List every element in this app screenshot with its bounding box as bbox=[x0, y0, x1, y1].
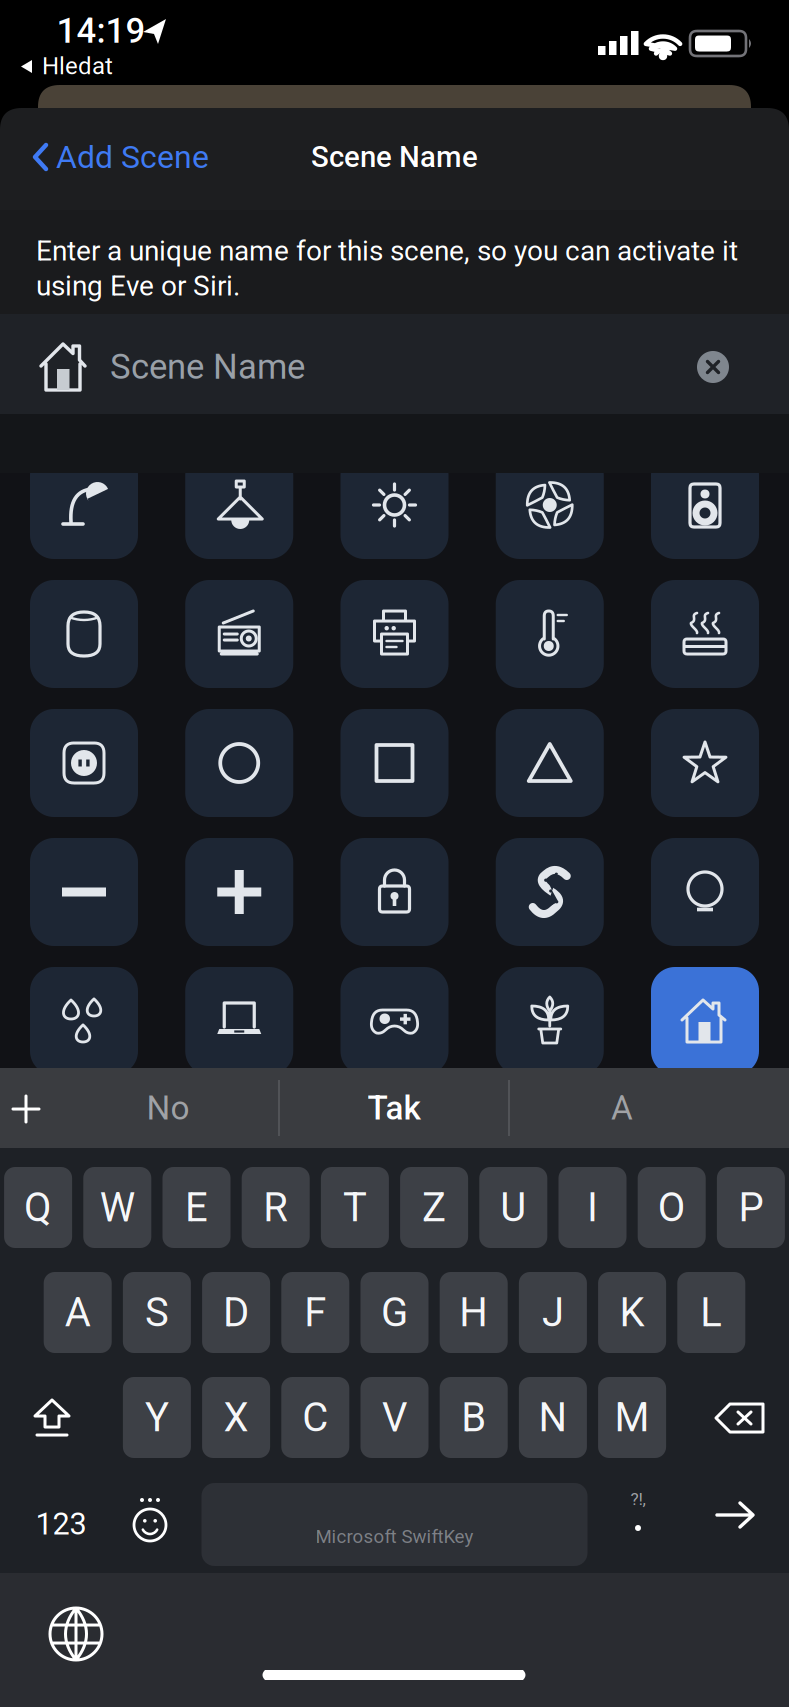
button[interactable]: Icon 19 bbox=[651, 838, 759, 946]
button[interactable]: Y bbox=[123, 1377, 191, 1458]
staticText: K bbox=[620, 1289, 645, 1336]
staticText: B bbox=[461, 1394, 486, 1441]
button[interactable]: Icon 17 bbox=[340, 838, 448, 946]
button[interactable]: I bbox=[558, 1167, 626, 1248]
staticText: H bbox=[459, 1289, 488, 1336]
staticText: U bbox=[500, 1184, 526, 1231]
button[interactable]: T bbox=[321, 1167, 389, 1248]
staticText: O bbox=[658, 1184, 686, 1231]
button[interactable]: P bbox=[717, 1167, 785, 1248]
button[interactable]: Icon 1 bbox=[185, 451, 293, 559]
button[interactable]: Switch keyboard bbox=[49, 1607, 103, 1661]
staticText: S bbox=[145, 1289, 169, 1336]
button[interactable]: Icon 12 bbox=[340, 709, 448, 817]
staticText: ?!, bbox=[630, 1489, 645, 1509]
button[interactable]: G bbox=[360, 1272, 428, 1353]
staticText: X bbox=[224, 1394, 249, 1441]
button[interactable]: N bbox=[519, 1377, 587, 1458]
staticText: L bbox=[700, 1289, 722, 1336]
button[interactable]: D bbox=[202, 1272, 270, 1353]
button[interactable]: Clear text bbox=[697, 351, 729, 383]
staticText: 14:19 bbox=[56, 11, 145, 51]
staticText: Enter a unique name for this scene, so y… bbox=[36, 235, 738, 267]
staticText: Scene Name bbox=[110, 347, 305, 387]
button[interactable]: Back to Add Scene bbox=[32, 141, 232, 173]
button[interactable]: W bbox=[83, 1167, 151, 1248]
button[interactable]: Shift bbox=[33, 1399, 71, 1437]
button[interactable]: O bbox=[638, 1167, 706, 1248]
button[interactable]: Icon 0 bbox=[30, 451, 138, 559]
button[interactable]: Icon 15 bbox=[30, 838, 138, 946]
button[interactable]: S bbox=[123, 1272, 191, 1353]
button[interactable]: Icon 20 bbox=[30, 967, 138, 1075]
button[interactable]: Emoji bbox=[133, 1498, 167, 1542]
staticText: Microsoft SwiftKey bbox=[315, 1526, 473, 1547]
staticText: W bbox=[100, 1184, 135, 1231]
button[interactable]: A bbox=[44, 1272, 112, 1353]
button[interactable]: M bbox=[598, 1377, 666, 1458]
button[interactable]: No bbox=[78, 1068, 258, 1148]
button[interactable]: Icon 8 bbox=[496, 580, 604, 688]
button[interactable]: 123 bbox=[11, 1484, 111, 1564]
staticText: V bbox=[382, 1394, 407, 1441]
button[interactable]: Icon 4 bbox=[651, 451, 759, 559]
button[interactable]: Icon 16 bbox=[185, 838, 293, 946]
button[interactable]: Icon 24 bbox=[651, 967, 759, 1075]
staticText: using Eve or Siri. bbox=[36, 270, 240, 302]
staticText: F bbox=[304, 1289, 326, 1336]
button[interactable]: L bbox=[677, 1272, 745, 1353]
button[interactable]: Icon 7 bbox=[340, 580, 448, 688]
staticText: Hledat bbox=[42, 52, 113, 80]
staticText: Q bbox=[24, 1184, 52, 1231]
staticText: No bbox=[146, 1088, 189, 1128]
staticText: D bbox=[223, 1289, 249, 1336]
staticText: R bbox=[263, 1184, 288, 1231]
button[interactable]: H bbox=[440, 1272, 508, 1353]
staticText: Add Scene bbox=[56, 138, 209, 176]
button[interactable]: U bbox=[479, 1167, 547, 1248]
button[interactable]: Icon 3 bbox=[496, 451, 604, 559]
staticText: E bbox=[185, 1184, 208, 1231]
staticText: 123 bbox=[35, 1506, 86, 1542]
button[interactable]: R bbox=[242, 1167, 310, 1248]
button[interactable]: Icon 23 bbox=[496, 967, 604, 1075]
button[interactable]: J bbox=[519, 1272, 587, 1353]
button[interactable]: Tak bbox=[294, 1068, 494, 1148]
staticText: Y bbox=[145, 1394, 169, 1441]
button[interactable]: Space bbox=[201, 1483, 587, 1566]
staticText: A bbox=[611, 1088, 633, 1128]
staticText: Scene Name bbox=[311, 140, 478, 174]
button[interactable]: V bbox=[360, 1377, 428, 1458]
button[interactable]: Add bbox=[12, 1095, 40, 1123]
button[interactable]: Icon 14 bbox=[651, 709, 759, 817]
staticText: N bbox=[538, 1394, 567, 1441]
button[interactable]: F bbox=[281, 1272, 349, 1353]
button[interactable]: K bbox=[598, 1272, 666, 1353]
button[interactable]: Icon 5 bbox=[30, 580, 138, 688]
button[interactable]: B bbox=[440, 1377, 508, 1458]
staticText: P bbox=[738, 1184, 763, 1231]
button[interactable]: Z bbox=[400, 1167, 468, 1248]
button[interactable]: C bbox=[281, 1377, 349, 1458]
button[interactable]: Delete bbox=[715, 1403, 765, 1433]
staticText: I bbox=[587, 1184, 598, 1231]
button[interactable]: Icon 10 bbox=[30, 709, 138, 817]
button[interactable]: Punctuation bbox=[613, 1487, 663, 1547]
staticText: A bbox=[65, 1289, 91, 1336]
button[interactable]: Icon 13 bbox=[496, 709, 604, 817]
button[interactable]: Next bbox=[716, 1500, 756, 1530]
staticText: G bbox=[381, 1289, 408, 1336]
staticText: M bbox=[615, 1394, 650, 1441]
button[interactable]: Icon 21 bbox=[185, 967, 293, 1075]
button[interactable]: Icon 2 bbox=[340, 451, 448, 559]
button[interactable]: Q bbox=[4, 1167, 72, 1248]
button[interactable]: X bbox=[202, 1377, 270, 1458]
staticText: C bbox=[302, 1394, 328, 1441]
button[interactable]: Icon 9 bbox=[651, 580, 759, 688]
button[interactable]: Icon 6 bbox=[185, 580, 293, 688]
button[interactable]: Icon 22 bbox=[340, 967, 448, 1075]
button[interactable]: E bbox=[162, 1167, 230, 1248]
button[interactable]: Icon 11 bbox=[185, 709, 293, 817]
button[interactable]: A bbox=[532, 1068, 712, 1148]
button[interactable]: Icon 18 bbox=[496, 838, 604, 946]
